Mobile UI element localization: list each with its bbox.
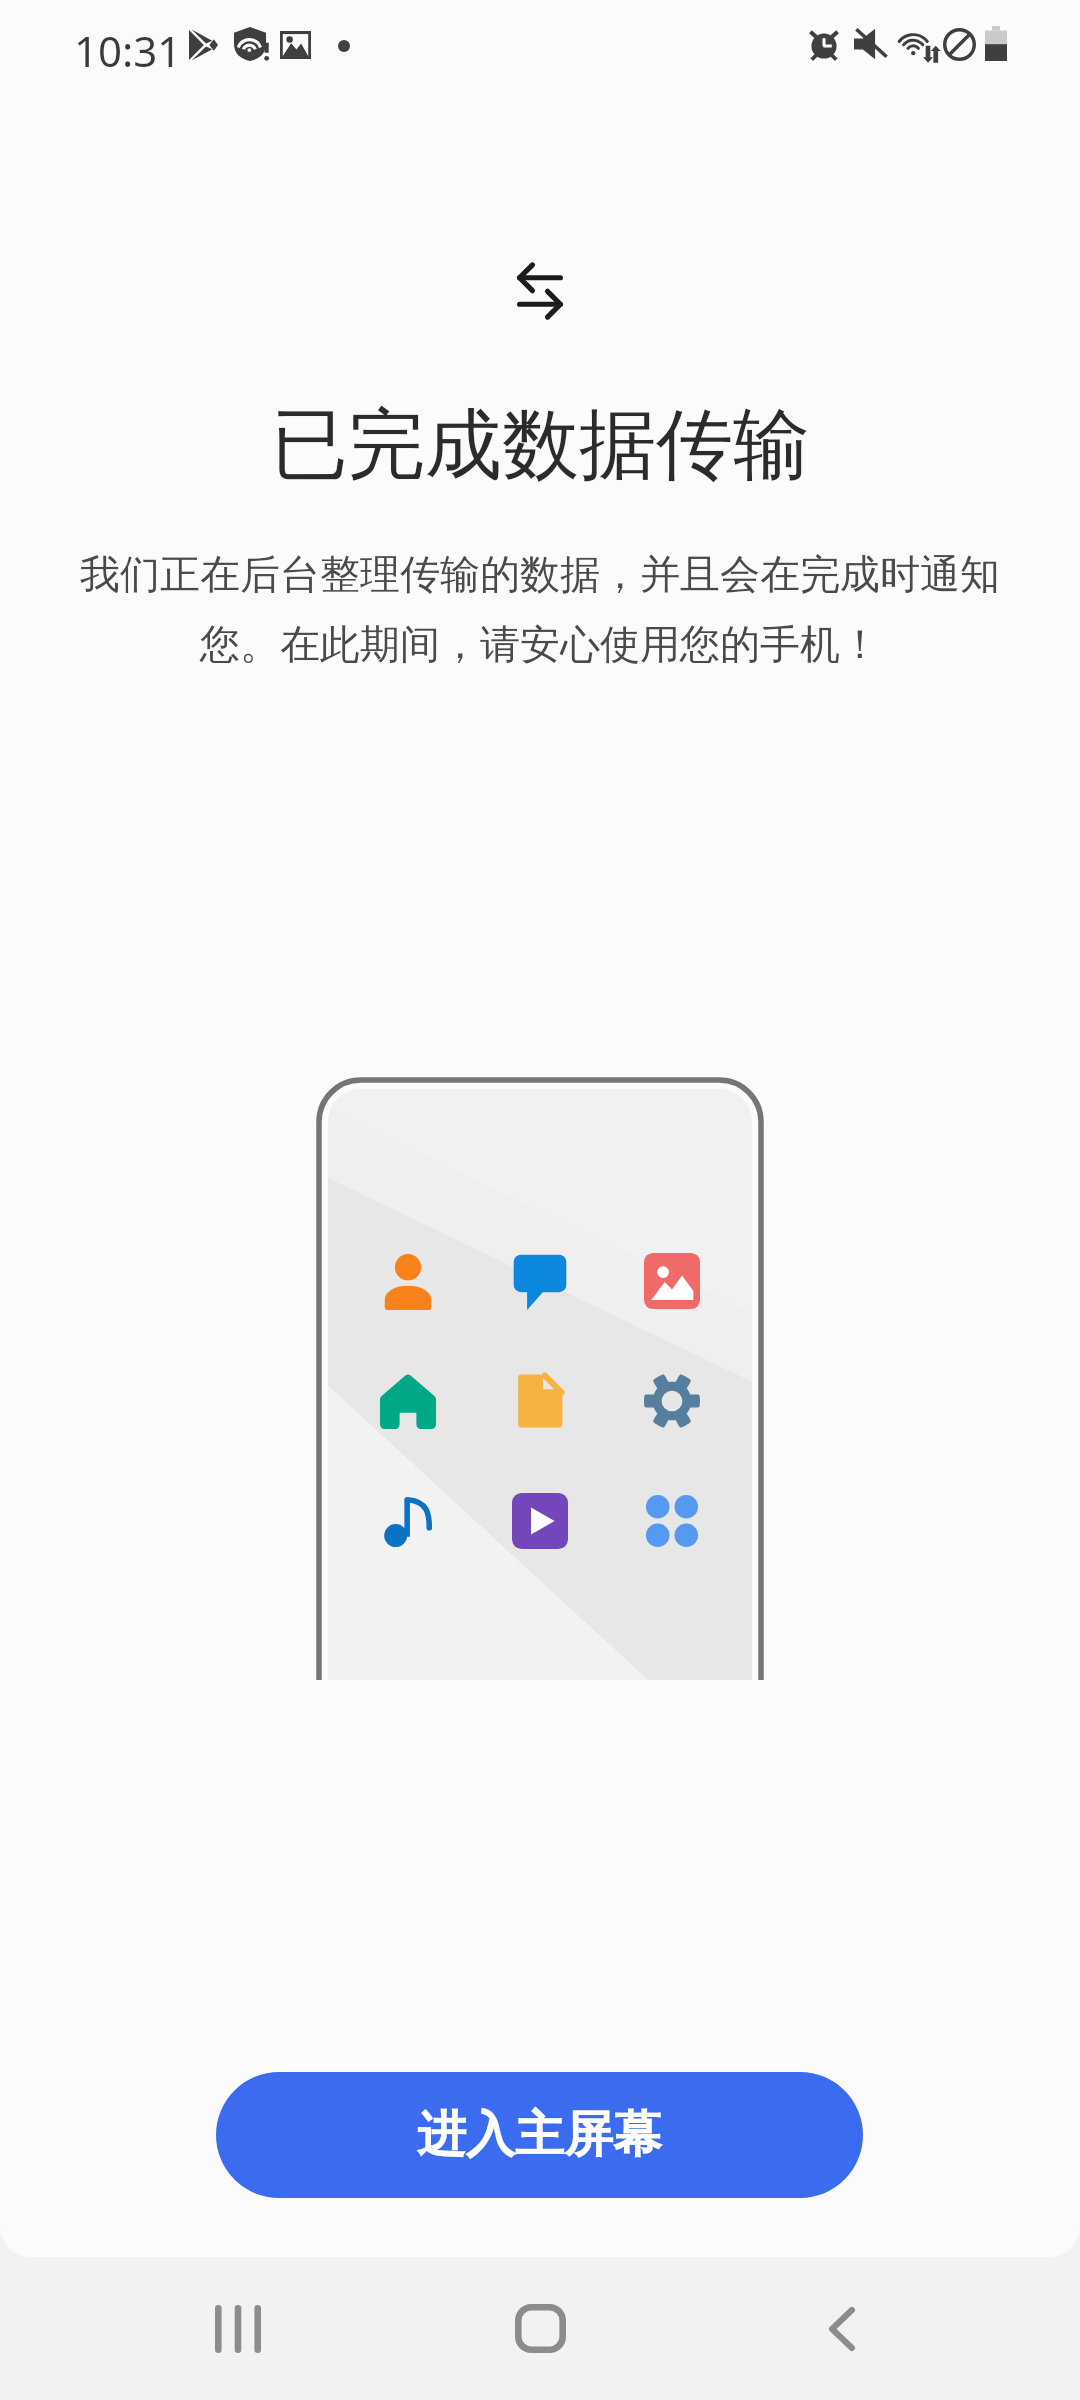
button[interactable]: Home [420, 2257, 660, 2400]
button[interactable]: Back [660, 2257, 1080, 2400]
button[interactable]: 进入主屏幕 [216, 2072, 863, 2198]
staticText: 10:31 [74, 22, 182, 79]
staticText: 我们正在后台整理传输的数据，并且会在完成时通知 您。在此期间，请安心使用您的手机… [80, 549, 1000, 670]
button[interactable]: Recent apps [0, 2257, 420, 2400]
staticText: 已完成数据传输 [271, 397, 810, 494]
staticText: 进入主屏幕 [417, 2104, 662, 2166]
